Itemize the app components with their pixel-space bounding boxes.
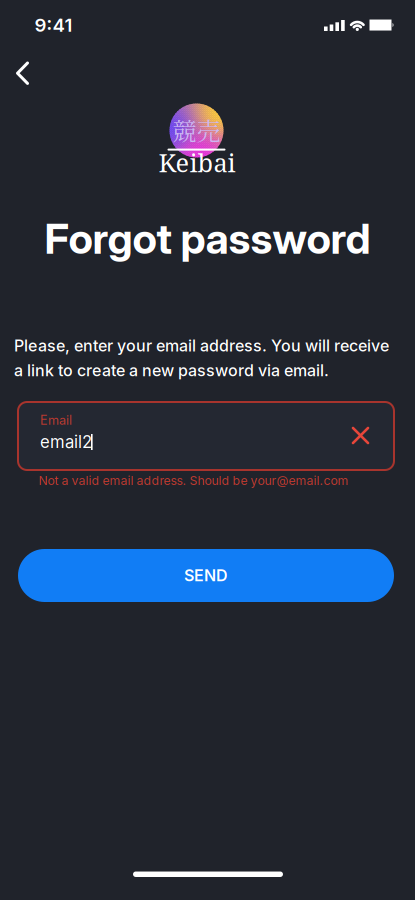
button[interactable]: SEND: [18, 549, 394, 602]
staticText: Please, enter your email address. You wi…: [14, 336, 389, 355]
button[interactable]: Email: [18, 402, 394, 470]
staticText: Keibai: [158, 145, 235, 180]
staticText: a link to create a new password via emai…: [14, 361, 329, 380]
staticText: Not a valid email address. Should be you…: [38, 473, 348, 488]
staticText: email2: [40, 432, 92, 452]
staticText: SEND: [184, 566, 228, 585]
staticText: Forgot password: [44, 213, 370, 264]
staticText: 9:41: [34, 14, 72, 36]
staticText: 競売: [172, 112, 220, 147]
button[interactable]: [0, 51, 44, 95]
button[interactable]: [345, 420, 375, 450]
staticText: Email: [40, 412, 72, 428]
